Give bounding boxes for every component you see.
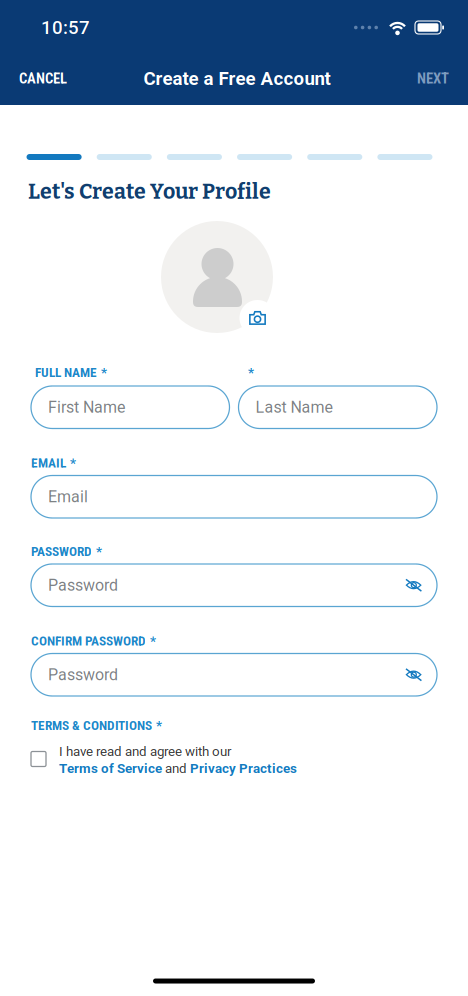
button[interactable]: Privacy Practices bbox=[190, 761, 297, 776]
button[interactable]: Terms of Service bbox=[59, 761, 162, 776]
staticText: * bbox=[96, 544, 102, 559]
button[interactable]: Email bbox=[31, 475, 437, 518]
staticText: * bbox=[101, 365, 107, 380]
staticText: and bbox=[162, 761, 190, 776]
staticText: FULL NAME bbox=[35, 365, 97, 380]
button[interactable]: Password bbox=[31, 653, 437, 696]
staticText: PASSWORD bbox=[31, 544, 92, 559]
staticText: * bbox=[70, 455, 76, 471]
staticText: I have read and agree with our bbox=[59, 744, 232, 759]
staticText: * bbox=[156, 718, 162, 733]
staticText: Privacy Practices bbox=[190, 761, 297, 776]
staticText: Let's Create Your Profile bbox=[28, 179, 271, 204]
staticText: * bbox=[150, 633, 156, 649]
button[interactable]: Password bbox=[31, 564, 437, 606]
staticText: TERMS & CONDITIONS bbox=[31, 718, 152, 733]
staticText: CONFIRM PASSWORD bbox=[31, 633, 146, 649]
staticText: NEXT bbox=[417, 70, 449, 87]
staticText: CANCEL bbox=[19, 70, 67, 87]
button[interactable]: Last Name bbox=[238, 386, 437, 428]
staticText: * bbox=[248, 365, 254, 380]
staticText: Email bbox=[48, 487, 88, 506]
button[interactable]: Agree to terms and conditions bbox=[31, 751, 46, 766]
staticText: Password bbox=[48, 576, 118, 595]
staticText: 10:57 bbox=[41, 17, 90, 38]
staticText: First Name bbox=[48, 398, 125, 417]
button[interactable]: NEXT bbox=[391, 53, 468, 103]
staticText: Password bbox=[48, 665, 118, 684]
button[interactable]: First Name bbox=[31, 386, 229, 428]
staticText: Create a Free Account bbox=[143, 68, 330, 89]
staticText: Terms of Service bbox=[59, 761, 162, 776]
staticText: Last Name bbox=[255, 398, 332, 417]
button[interactable]: CANCEL bbox=[0, 53, 83, 103]
button[interactable]: Add profile photo bbox=[161, 221, 273, 333]
staticText: EMAIL bbox=[31, 455, 66, 471]
